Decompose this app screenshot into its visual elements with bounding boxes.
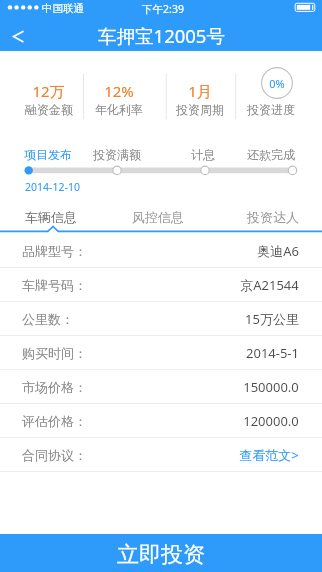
staticText: 投资周期 [176, 102, 224, 117]
staticText: 下午2:39 [142, 2, 184, 16]
button[interactable]: 12% [70, 51, 168, 142]
staticText: 合同协议： [22, 447, 87, 463]
staticText: 京A21544 [240, 276, 299, 294]
staticText: 年化利率 [95, 102, 143, 117]
staticText: 公里数： [22, 311, 74, 327]
staticText: 120000.0 [243, 412, 299, 430]
button[interactable]: 立即投资 [0, 534, 322, 572]
staticText: 评估价格： [22, 413, 87, 429]
staticText: 投资进度 [247, 102, 295, 117]
staticText: 还款完成 [247, 147, 295, 162]
staticText: 12% [104, 81, 134, 101]
button[interactable]: 市场价格： [0, 370, 322, 404]
staticText: 查看范文> [239, 446, 299, 464]
staticText: 车牌号码： [22, 277, 87, 293]
staticText: 品牌型号： [22, 243, 87, 259]
staticText: 投资达人 [247, 209, 299, 225]
button[interactable]: 合同协议： [0, 438, 322, 472]
staticText: 车押宝12005号 [98, 23, 225, 48]
staticText: 12万 [32, 81, 65, 101]
staticText: 计息 [191, 147, 215, 162]
staticText: 150000.0 [243, 378, 299, 396]
staticText: 项目发布 [24, 147, 72, 162]
staticText: 风控信息 [132, 209, 184, 225]
staticText: 1月 [188, 81, 212, 101]
staticText: 立即投资 [117, 541, 205, 569]
staticText: 2014-12-10 [25, 180, 80, 194]
button[interactable]: 评估价格： [0, 404, 322, 438]
button[interactable]: 12万 [0, 51, 97, 142]
staticText: 投资满额 [93, 147, 141, 162]
button[interactable]: 品牌型号： [0, 234, 322, 268]
staticText: 购买时间： [22, 345, 87, 361]
staticText: 车辆信息 [25, 209, 77, 225]
staticText: 0% [269, 76, 285, 91]
button[interactable]: 投资达人 [213, 195, 322, 229]
staticText: 融资金额 [25, 102, 73, 117]
button[interactable]: 车辆信息 [0, 195, 102, 229]
button[interactable]: 风控信息 [102, 195, 213, 229]
staticText: 奥迪A6 [257, 242, 299, 260]
staticText: 中国联通 [42, 2, 84, 15]
button[interactable]: 车牌号码： [0, 268, 322, 302]
button[interactable]: 公里数： [0, 302, 322, 336]
button[interactable]: Back [0, 20, 40, 51]
staticText: 15万公里 [245, 310, 299, 328]
staticText: 2014-5-1 [246, 344, 299, 362]
button[interactable]: 0% [222, 51, 319, 142]
button[interactable]: 1月 [151, 51, 248, 142]
staticText: 市场价格： [22, 379, 87, 395]
button[interactable]: 购买时间： [0, 336, 322, 370]
